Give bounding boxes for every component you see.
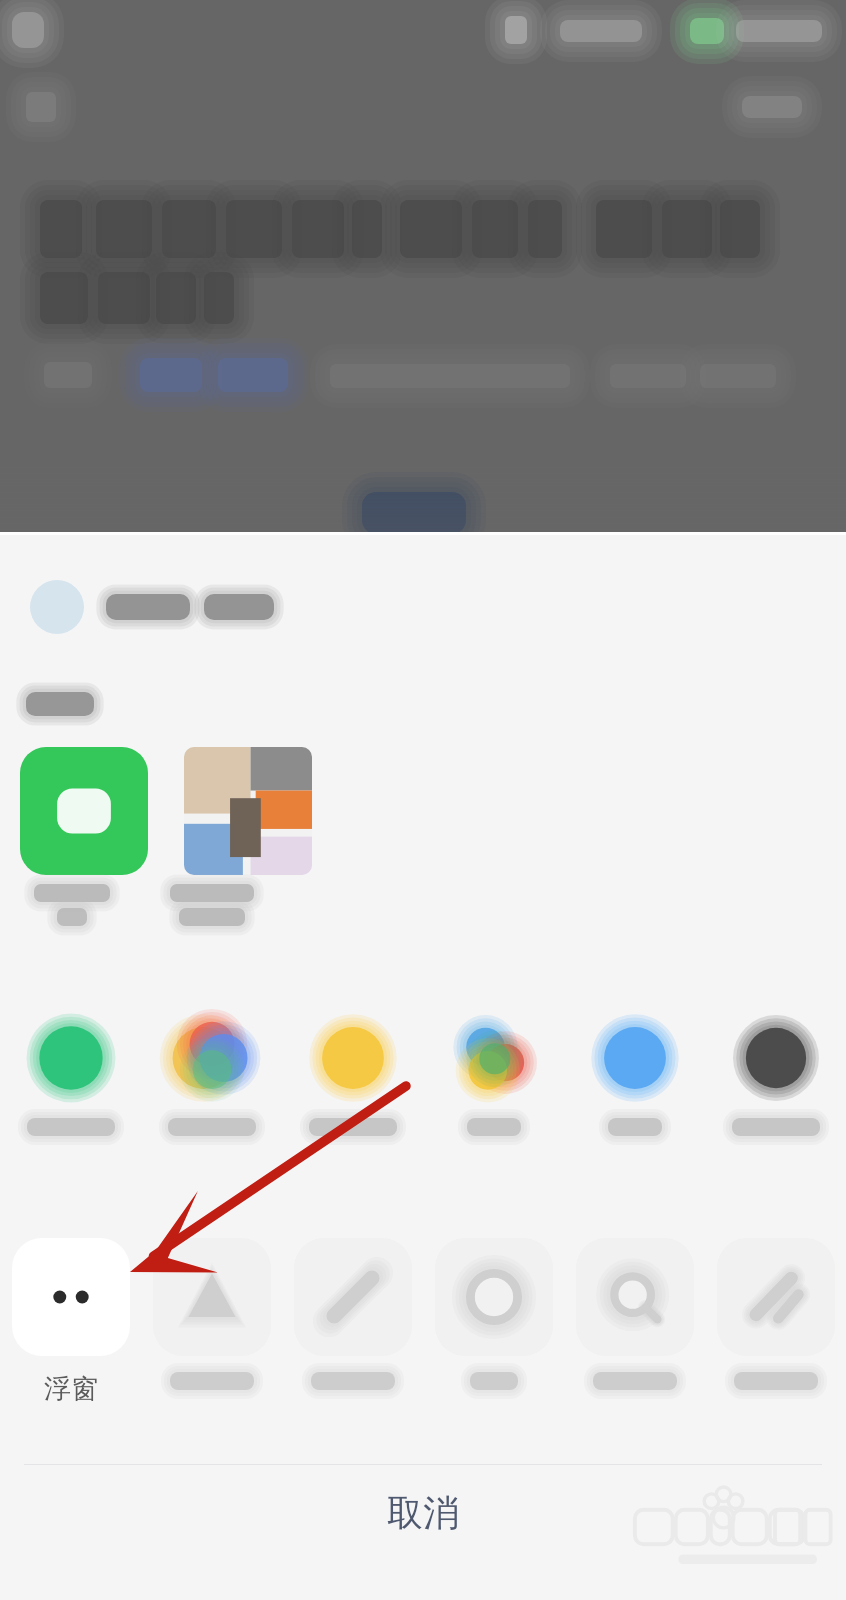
button[interactable]: 浮窗 [0,1222,141,1422]
button[interactable]: 举报 [141,1222,282,1422]
button[interactable]: 搜索 [564,1222,705,1422]
button[interactable]: 编辑 [282,1222,423,1422]
button[interactable] [8,735,160,887]
button[interactable]: 定时 [423,1222,564,1422]
staticText: 取消 [387,1490,459,1535]
button[interactable]: 蓝信 [564,1000,705,1175]
button[interactable]: 照片 [423,1000,564,1175]
button[interactable]: 取消 [0,1462,846,1562]
button[interactable]: 更多 [705,1000,846,1175]
button[interactable]: 更多 [705,1222,846,1422]
button[interactable]: 备忘录 [282,1000,423,1175]
button[interactable]: 微信 [0,1000,141,1175]
button[interactable] [172,735,324,887]
button[interactable]: 相册 [141,1000,282,1175]
staticText: 浮窗 [44,1372,98,1406]
button[interactable] [26,576,278,638]
